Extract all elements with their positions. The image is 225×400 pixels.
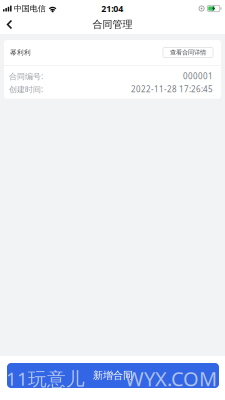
staticText: 合同编号:	[9, 71, 43, 82]
staticText: WYX.COM	[125, 365, 217, 392]
staticText: 21:04	[101, 2, 123, 14]
staticText: 2022-11-28 17:26:45	[131, 84, 213, 95]
staticText: 中国电信	[14, 3, 46, 14]
button[interactable]: 查看合同详情	[163, 47, 213, 57]
staticText: 幂利利	[10, 48, 31, 57]
staticText: 000001	[183, 71, 213, 82]
button[interactable]: 返回	[0, 15, 19, 34]
staticText: 创建时间:	[9, 84, 43, 95]
staticText: 新增合同	[93, 369, 133, 382]
staticText: 查看合同详情	[170, 49, 206, 56]
button[interactable]: 新增合同	[7, 363, 219, 388]
staticText: 11玩意儿	[6, 366, 85, 391]
staticText: 合同管理	[92, 18, 132, 31]
